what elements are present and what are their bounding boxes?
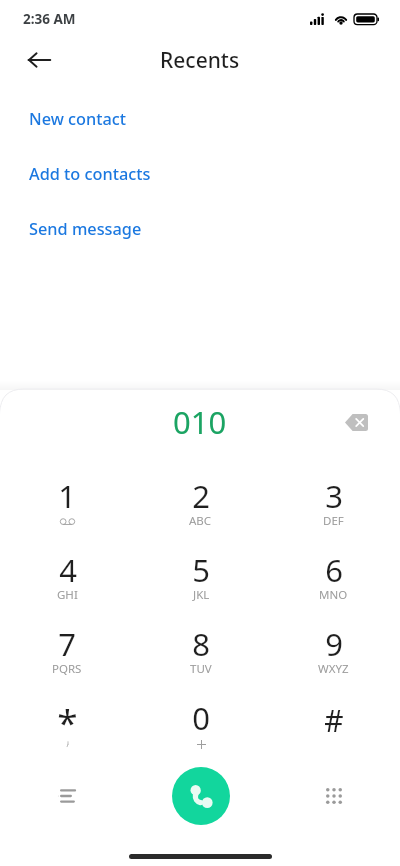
- staticText: Recents: [160, 46, 240, 75]
- button[interactable]: 0: [134, 689, 267, 763]
- button[interactable]: 8: [134, 615, 267, 689]
- button[interactable]: Add to contacts: [0, 146, 400, 201]
- button[interactable]: 4: [0, 541, 134, 615]
- staticText: TUV: [190, 661, 212, 677]
- staticText: *: [57, 696, 78, 746]
- button[interactable]: Send message: [0, 201, 400, 256]
- staticText: 1: [58, 475, 76, 517]
- staticText: PQRS: [52, 661, 82, 677]
- staticText: 7: [58, 623, 76, 665]
- staticText: Add to contacts: [29, 163, 151, 185]
- button[interactable]: 6: [267, 541, 400, 615]
- staticText: JKL: [193, 587, 210, 603]
- staticText: 0: [192, 697, 210, 739]
- staticText: 010: [173, 401, 227, 443]
- staticText: 6: [325, 549, 343, 591]
- staticText: 8: [192, 623, 210, 665]
- staticText: 9: [325, 623, 343, 665]
- button[interactable]: Back: [19, 40, 59, 80]
- button[interactable]: 2: [134, 467, 267, 541]
- staticText: New contact: [29, 108, 127, 130]
- staticText: 3: [325, 475, 343, 517]
- button[interactable]: 5: [134, 541, 267, 615]
- staticText: 5: [192, 549, 210, 591]
- button[interactable]: Backspace: [336, 402, 376, 442]
- staticText: WXYZ: [318, 661, 349, 677]
- staticText: ABC: [189, 513, 212, 529]
- staticText: MNO: [319, 587, 348, 603]
- button[interactable]: #: [267, 689, 400, 763]
- staticText: #: [324, 700, 344, 741]
- button[interactable]: 9: [267, 615, 400, 689]
- button[interactable]: 3: [267, 467, 400, 541]
- button[interactable]: Call: [172, 767, 230, 825]
- staticText: DEF: [323, 513, 344, 529]
- staticText: 4: [59, 549, 77, 591]
- button[interactable]: *: [0, 689, 134, 763]
- staticText: 2: [192, 475, 210, 517]
- button[interactable]: New contact: [0, 91, 400, 146]
- button[interactable]: Call log: [43, 772, 91, 820]
- staticText: GHI: [57, 587, 78, 603]
- button[interactable]: 1: [0, 467, 134, 541]
- staticText: Send message: [29, 218, 142, 240]
- button[interactable]: Keypad: [310, 772, 358, 820]
- button[interactable]: 7: [0, 615, 134, 689]
- staticText: 2:36 AM: [23, 10, 76, 28]
